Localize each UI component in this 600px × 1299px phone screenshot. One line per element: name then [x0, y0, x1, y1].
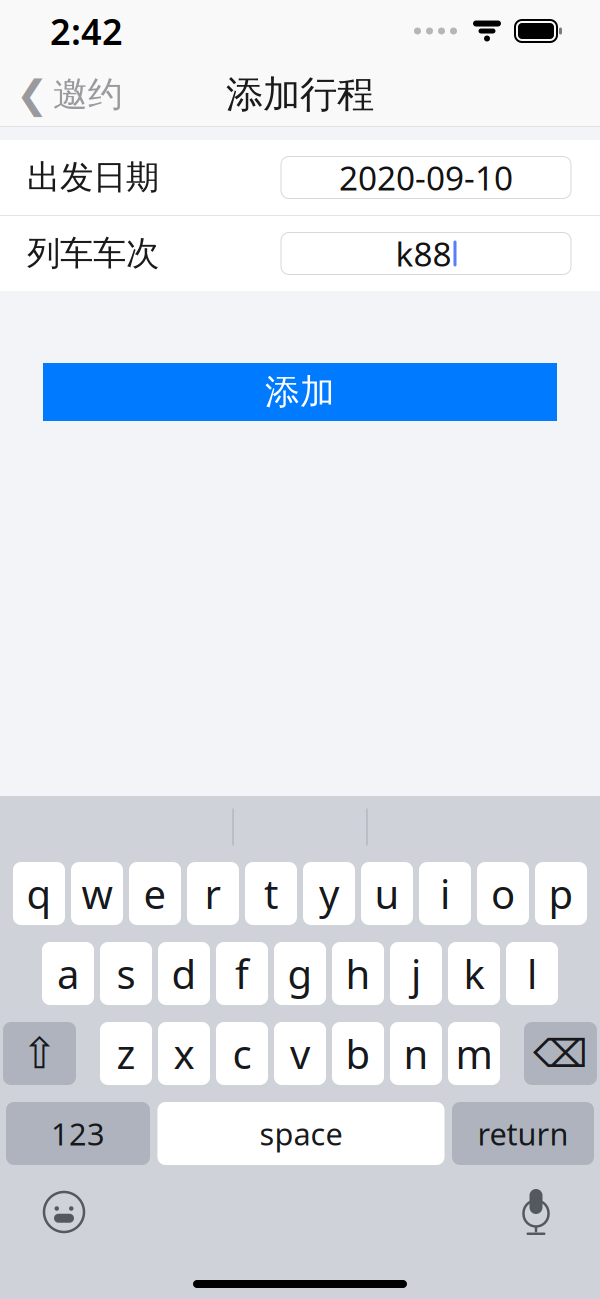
- button[interactable]: ❮: [0, 61, 123, 128]
- staticText: u: [374, 867, 399, 920]
- staticText: m: [455, 1027, 492, 1080]
- button[interactable]: d: [158, 942, 210, 1005]
- button[interactable]: a: [42, 942, 94, 1005]
- button[interactable]: t: [245, 862, 297, 925]
- staticText: j: [411, 947, 421, 1000]
- staticText: 123: [51, 1113, 105, 1154]
- staticText: 出发日期: [27, 157, 159, 198]
- staticText: k88: [395, 231, 451, 276]
- button[interactable]: 123: [6, 1102, 150, 1165]
- button[interactable]: n: [390, 1022, 442, 1085]
- button[interactable]: u: [361, 862, 413, 925]
- button[interactable]: v: [274, 1022, 326, 1085]
- button[interactable]: k: [448, 942, 500, 1005]
- button[interactable]: 2020-09-10: [281, 156, 571, 198]
- button[interactable]: space: [157, 1102, 444, 1165]
- staticText: e: [143, 867, 166, 920]
- staticText: x: [173, 1027, 194, 1080]
- button[interactable]: s: [100, 942, 152, 1005]
- button[interactable]: q: [13, 862, 65, 925]
- staticText: i: [440, 867, 450, 920]
- button[interactable]: z: [100, 1022, 152, 1085]
- button[interactable]: m: [448, 1022, 500, 1085]
- button[interactable]: e: [129, 862, 181, 925]
- button[interactable]: y: [303, 862, 355, 925]
- button[interactable]: b: [332, 1022, 384, 1085]
- staticText: n: [403, 1027, 428, 1080]
- button[interactable]: 添加: [43, 363, 557, 421]
- staticText: 添加: [265, 371, 335, 413]
- staticText: space: [259, 1113, 342, 1154]
- staticText: f: [235, 947, 249, 1000]
- staticText: b: [345, 1027, 370, 1080]
- staticText: y: [319, 867, 339, 920]
- button[interactable]: f: [216, 942, 268, 1005]
- staticText: 添加行程: [226, 72, 374, 117]
- button[interactable]: Emoji: [30, 1178, 98, 1246]
- staticText: t: [264, 867, 278, 920]
- staticText: g: [287, 947, 312, 1000]
- staticText: 列车车次: [27, 233, 159, 274]
- staticText: 邀约: [53, 73, 123, 116]
- staticText: s: [116, 947, 135, 1000]
- button[interactable]: j: [390, 942, 442, 1005]
- staticText: a: [57, 947, 79, 1000]
- staticText: h: [345, 947, 370, 1000]
- staticText: d: [171, 947, 196, 1000]
- button[interactable]: o: [477, 862, 529, 925]
- button[interactable]: p: [535, 862, 587, 925]
- staticText: z: [116, 1027, 135, 1080]
- button[interactable]: k88: [281, 232, 571, 274]
- button[interactable]: l: [506, 942, 558, 1005]
- button[interactable]: Shift: [3, 1022, 76, 1085]
- button[interactable]: c: [216, 1022, 268, 1085]
- staticText: w: [81, 867, 112, 920]
- button[interactable]: Dictation: [502, 1177, 570, 1247]
- button[interactable]: i: [419, 862, 471, 925]
- button[interactable]: r: [187, 862, 239, 925]
- staticText: c: [232, 1027, 251, 1080]
- button[interactable]: h: [332, 942, 384, 1005]
- staticText: p: [548, 867, 573, 920]
- staticText: r: [204, 867, 221, 920]
- staticText: 2:42: [50, 7, 123, 55]
- button[interactable]: return: [452, 1102, 594, 1165]
- button[interactable]: x: [158, 1022, 210, 1085]
- button[interactable]: w: [71, 862, 123, 925]
- staticText: v: [290, 1027, 310, 1080]
- staticText: ❮: [16, 73, 48, 116]
- staticText: return: [477, 1113, 568, 1154]
- staticText: ⇧: [21, 1029, 57, 1078]
- staticText: o: [491, 867, 515, 920]
- staticText: 2020-09-10: [339, 155, 513, 200]
- staticText: l: [527, 947, 537, 1000]
- staticText: k: [463, 947, 484, 1000]
- staticText: ⌫: [533, 1032, 588, 1075]
- button[interactable]: g: [274, 942, 326, 1005]
- staticText: q: [26, 867, 51, 920]
- button[interactable]: Delete: [524, 1022, 597, 1085]
